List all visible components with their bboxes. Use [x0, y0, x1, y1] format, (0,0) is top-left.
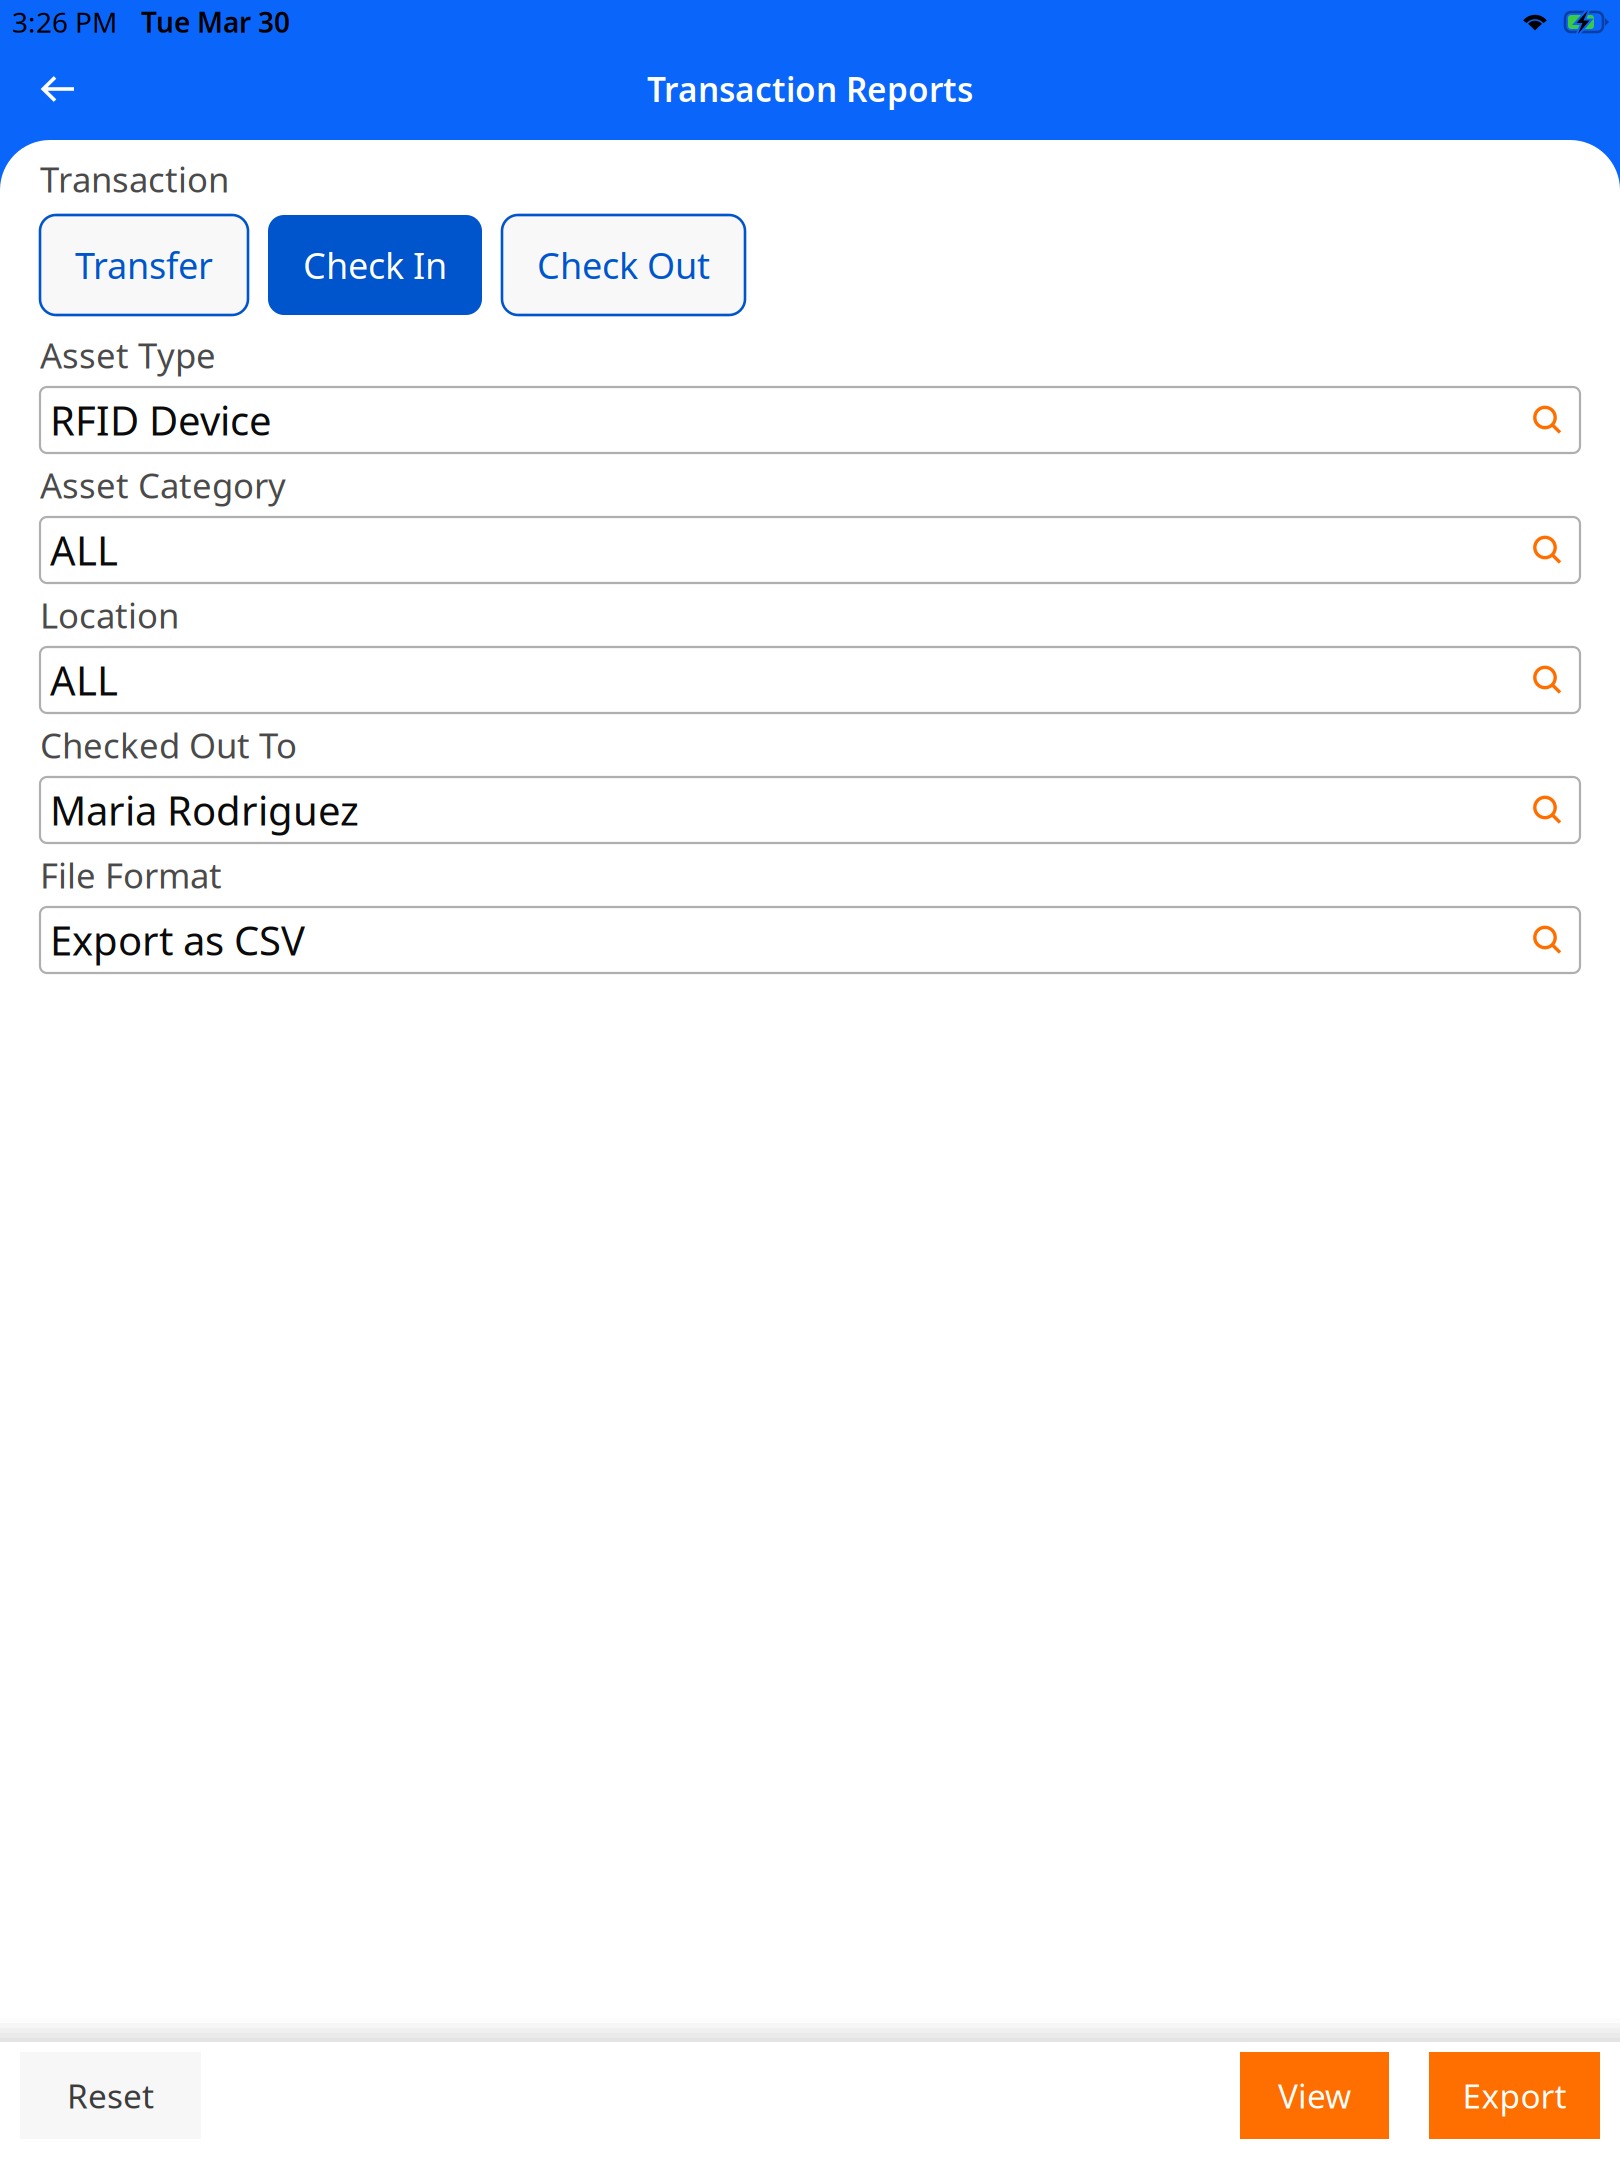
button[interactable]: Export as CSV — [40, 907, 1580, 973]
button[interactable]: View — [1240, 2052, 1389, 2139]
staticText: 3:26 PM — [12, 3, 117, 41]
staticText: Asset Type — [40, 332, 216, 378]
button[interactable]: RFID Device — [40, 387, 1580, 453]
staticText: Reset — [67, 2073, 154, 2118]
button[interactable]: Maria Rodriguez — [40, 777, 1580, 843]
staticText: Location — [40, 592, 179, 638]
staticText: RFID Device — [50, 393, 272, 446]
button[interactable]: ALL — [40, 517, 1580, 583]
staticText: Maria Rodriguez — [50, 783, 359, 836]
staticText: View — [1278, 2073, 1351, 2118]
staticText: ALL — [50, 523, 118, 576]
staticText: Export as CSV — [50, 913, 305, 966]
staticText: Check Out — [537, 241, 710, 289]
button[interactable]: Reset — [20, 2052, 201, 2139]
staticText: Transaction — [40, 156, 229, 202]
staticText: Export — [1462, 2073, 1566, 2118]
staticText: Transfer — [75, 241, 213, 289]
button[interactable]: Check In — [268, 215, 482, 315]
staticText: Tue Mar 30 — [141, 3, 290, 41]
button[interactable]: Check Out — [502, 215, 745, 315]
button[interactable]: Transfer — [40, 215, 248, 315]
staticText: File Format — [40, 852, 222, 898]
button[interactable]: Export — [1429, 2052, 1600, 2139]
staticText: ALL — [50, 653, 118, 706]
staticText: Asset Category — [40, 462, 286, 508]
button[interactable]: Back — [27, 62, 89, 116]
staticText: Transaction Reports — [647, 67, 973, 111]
staticText: Checked Out To — [40, 722, 297, 768]
staticText: Check In — [303, 241, 447, 289]
button[interactable]: ALL — [40, 647, 1580, 713]
